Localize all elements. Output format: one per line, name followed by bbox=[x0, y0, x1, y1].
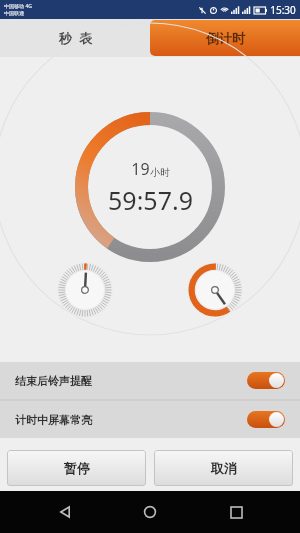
staticText: 小时 bbox=[150, 166, 170, 179]
button[interactable]: 取消 bbox=[154, 450, 293, 486]
button[interactable]: 倒计时 bbox=[150, 20, 300, 56]
button[interactable]: 计时中屏幕常亮 bbox=[0, 401, 300, 438]
staticText: 结束后铃声提醒 bbox=[15, 374, 92, 388]
staticText: 计时中屏幕常亮 bbox=[15, 413, 92, 427]
button[interactable]: Home bbox=[129, 491, 171, 533]
other: 结束后铃声提醒 bbox=[247, 372, 285, 389]
button[interactable]: Recents bbox=[215, 491, 257, 533]
staticText: 19 bbox=[131, 158, 150, 180]
button[interactable]: Back bbox=[44, 491, 86, 533]
button[interactable]: 秒 表 bbox=[0, 19, 150, 57]
staticText: 暂停 bbox=[64, 460, 90, 476]
button[interactable]: 结束后铃声提醒 bbox=[0, 362, 300, 399]
other: 计时中屏幕常亮 bbox=[247, 411, 285, 428]
staticText: 倒计时 bbox=[206, 30, 245, 46]
staticText: 中国移动 4G bbox=[4, 3, 32, 10]
staticText: 59:57.9 bbox=[108, 183, 193, 217]
button[interactable]: 暂停 bbox=[7, 450, 146, 486]
staticText: 中国联通 bbox=[4, 10, 24, 16]
staticText: 取消 bbox=[211, 460, 237, 476]
staticText: 秒 表 bbox=[59, 29, 92, 47]
staticText: 15:30 bbox=[270, 3, 296, 17]
